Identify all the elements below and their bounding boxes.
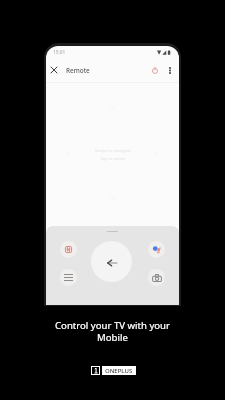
button[interactable]: Screenshot	[148, 269, 165, 286]
staticText: Remote	[66, 66, 90, 75]
staticText: Swipe to navigate	[95, 147, 131, 153]
button[interactable]: Back	[91, 241, 132, 282]
staticText: Tap to select	[100, 155, 126, 161]
staticText: ONEPLUS	[105, 367, 133, 375]
button[interactable]: Keyboard	[60, 269, 77, 286]
button[interactable]: Power	[148, 63, 162, 77]
button[interactable]: Close	[47, 63, 61, 77]
staticText: Control your TV with your Mobile	[55, 319, 170, 344]
button[interactable]: Google Assistant	[148, 241, 165, 258]
button[interactable]: Netflix	[60, 241, 77, 258]
button[interactable]: More options	[163, 63, 177, 77]
staticText: 15:01	[53, 49, 66, 56]
